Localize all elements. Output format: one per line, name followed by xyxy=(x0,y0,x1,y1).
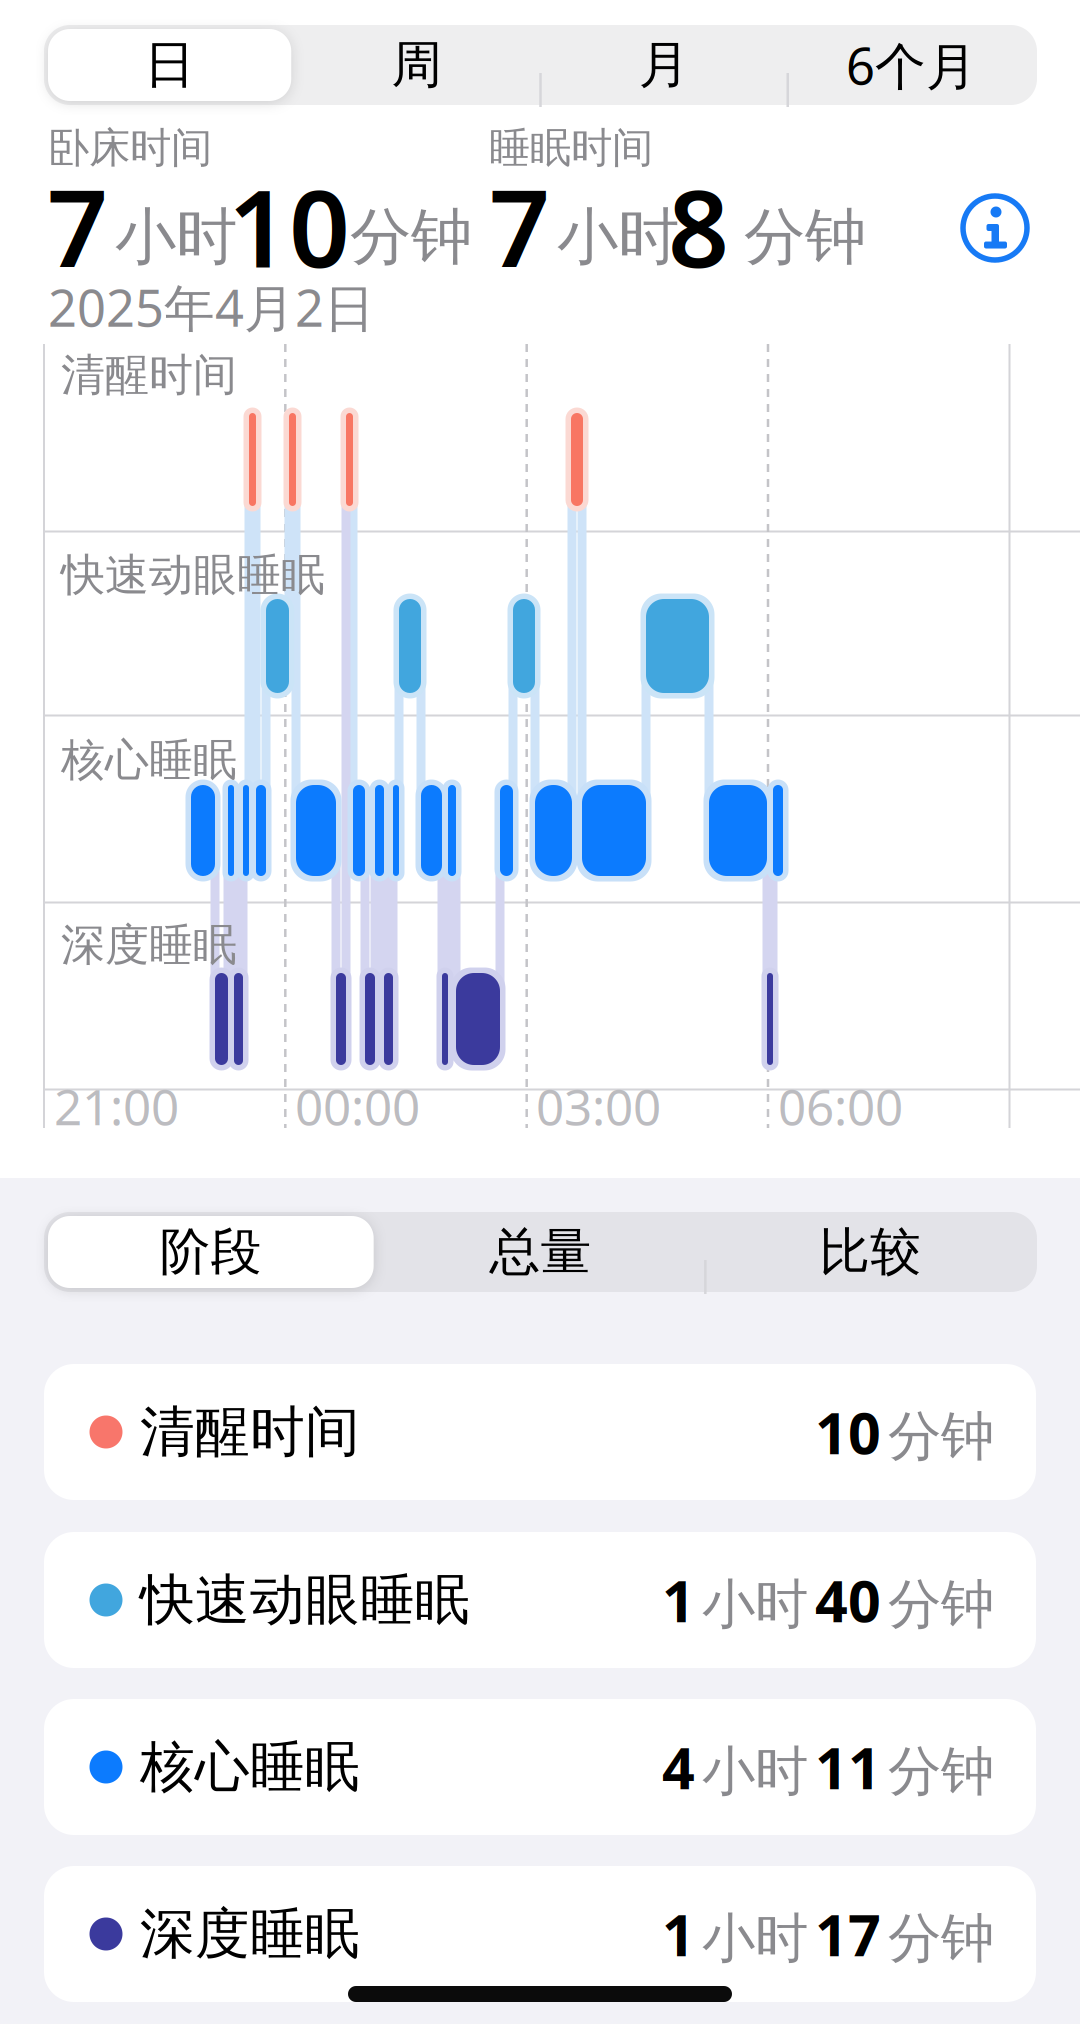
staticText: 阶段 xyxy=(160,1221,262,1283)
staticText: 月 xyxy=(639,34,690,96)
staticText: 小时 xyxy=(115,199,237,275)
staticText: 周 xyxy=(391,34,442,96)
button[interactable]: 了解更多睡眠信息 xyxy=(960,193,1030,263)
staticText: 分钟 xyxy=(888,1906,994,1971)
button[interactable]: 日 xyxy=(46,25,293,105)
staticText: 7 xyxy=(47,155,108,297)
button[interactable]: 总量 xyxy=(376,1212,705,1292)
staticText: 睡眠时间 xyxy=(489,123,653,173)
staticText: 核心睡眠 xyxy=(61,733,237,787)
button[interactable]: 4 xyxy=(44,1699,1036,1835)
staticText: 分钟 xyxy=(888,1739,994,1804)
staticText: 小时 xyxy=(702,1906,808,1971)
staticText: 快速动眼睡眠 xyxy=(140,1566,470,1633)
staticText: 日 xyxy=(144,34,195,96)
staticText: 清醒时间 xyxy=(140,1398,360,1465)
staticText: 6个月 xyxy=(846,31,977,99)
staticText: 清醒时间 xyxy=(61,348,237,402)
button[interactable]: 10 xyxy=(44,1364,1036,1500)
staticText: 核心睡眠 xyxy=(140,1733,360,1800)
staticText: 比较 xyxy=(819,1221,921,1283)
button[interactable]: 周 xyxy=(293,25,540,105)
staticText: 分钟 xyxy=(350,199,472,275)
button[interactable]: 比较 xyxy=(705,1212,1035,1292)
button[interactable]: 阶段 xyxy=(46,1212,376,1292)
staticText: 21:00 xyxy=(54,1073,179,1139)
staticText: 4 xyxy=(662,1729,695,1805)
staticText: 10 xyxy=(815,1394,881,1470)
staticText: 分钟 xyxy=(744,199,866,275)
staticText: 分钟 xyxy=(888,1572,994,1637)
staticText: 分钟 xyxy=(888,1404,994,1469)
staticText: 小时 xyxy=(702,1572,808,1637)
staticText: 7 xyxy=(489,155,550,297)
button[interactable]: 1 xyxy=(44,1866,1036,2002)
staticText: 8 xyxy=(668,155,729,297)
staticText: 10 xyxy=(228,155,350,297)
staticText: 03:00 xyxy=(536,1073,661,1139)
staticText: 00:00 xyxy=(295,1073,420,1139)
staticText: 1 xyxy=(662,1896,695,1972)
staticText: 2025年4月2日 xyxy=(48,273,375,341)
staticText: 1 xyxy=(662,1562,695,1638)
staticText: 小时 xyxy=(557,199,679,275)
staticText: 总量 xyxy=(489,1221,591,1283)
staticText: 11 xyxy=(815,1729,881,1805)
staticText: 40 xyxy=(815,1562,881,1638)
staticText: 卧床时间 xyxy=(48,123,212,173)
staticText: 小时 xyxy=(702,1739,808,1804)
button[interactable]: 1 xyxy=(44,1532,1036,1668)
button[interactable]: 月 xyxy=(540,25,788,105)
button[interactable]: 6个月 xyxy=(788,25,1035,105)
staticText: 深度睡眠 xyxy=(140,1900,360,1967)
staticText: 06:00 xyxy=(778,1073,903,1139)
staticText: 深度睡眠 xyxy=(61,918,237,972)
staticText: 17 xyxy=(815,1896,881,1972)
staticText: 快速动眼睡眠 xyxy=(61,548,325,602)
